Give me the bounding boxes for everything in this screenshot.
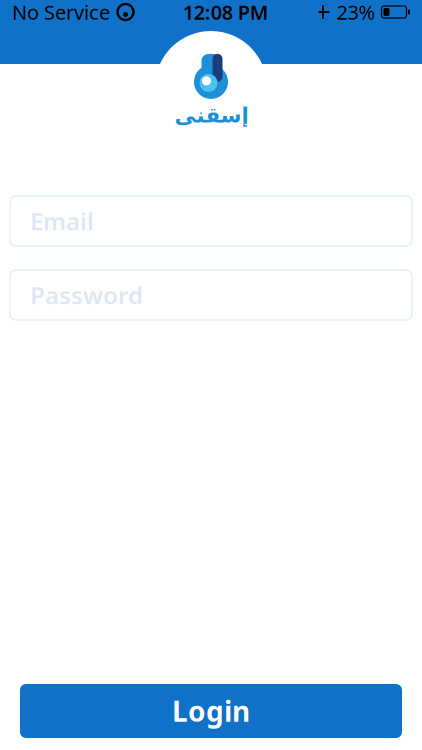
staticText: Password bbox=[30, 279, 143, 311]
button[interactable]: Password bbox=[10, 270, 412, 320]
button[interactable]: Login bbox=[20, 684, 402, 738]
staticText: No Service bbox=[12, 0, 110, 25]
staticText: 23% bbox=[336, 0, 375, 25]
staticText: Email bbox=[30, 205, 94, 237]
staticText: 12:08 PM bbox=[183, 0, 269, 25]
staticText: إسقنى bbox=[174, 103, 248, 127]
button[interactable]: Email bbox=[10, 196, 412, 246]
staticText: Login bbox=[172, 692, 250, 730]
